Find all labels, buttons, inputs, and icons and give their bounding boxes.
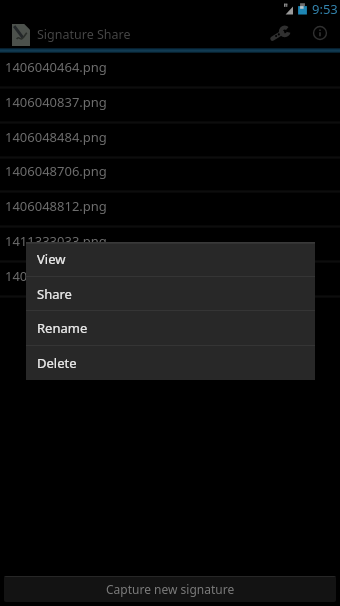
button[interactable]: Capture new signature: [4, 576, 336, 602]
button[interactable]: 1406040464.png: [0, 53, 340, 88]
staticText: 1406040464.png: [5, 58, 107, 76]
staticText: 1406040837.png: [5, 93, 107, 111]
button[interactable]: 1406048706.png: [0, 157, 340, 192]
staticText: Capture new signature: [106, 581, 235, 597]
button[interactable]: About: [304, 18, 336, 48]
button[interactable]: Signature Share: [0, 18, 340, 48]
staticText: 1406048812.png: [5, 197, 107, 215]
staticText: Delete: [37, 354, 77, 372]
staticText: 1406049117.png: [5, 267, 107, 285]
staticText: 1411333033.png: [5, 232, 107, 250]
button[interactable]: Delete: [26, 346, 315, 381]
staticText: View: [37, 250, 66, 268]
button[interactable]: 1411333033.png: [0, 227, 340, 262]
staticText: 9:53: [312, 0, 338, 18]
button[interactable]: Share: [26, 277, 315, 312]
staticText: 1406048706.png: [5, 162, 107, 180]
button[interactable]: Rename: [26, 311, 315, 346]
button[interactable]: 1406048484.png: [0, 123, 340, 158]
button[interactable]: 1406048812.png: [0, 192, 340, 227]
button[interactable]: 1406049117.png: [0, 262, 340, 297]
button[interactable]: 1406040837.png: [0, 88, 340, 123]
button[interactable]: Settings: [264, 18, 304, 48]
staticText: 1406048484.png: [5, 128, 107, 146]
staticText: Share: [37, 285, 72, 303]
staticText: Rename: [37, 319, 88, 337]
staticText: Signature Share: [37, 26, 131, 43]
button[interactable]: View: [26, 242, 315, 277]
